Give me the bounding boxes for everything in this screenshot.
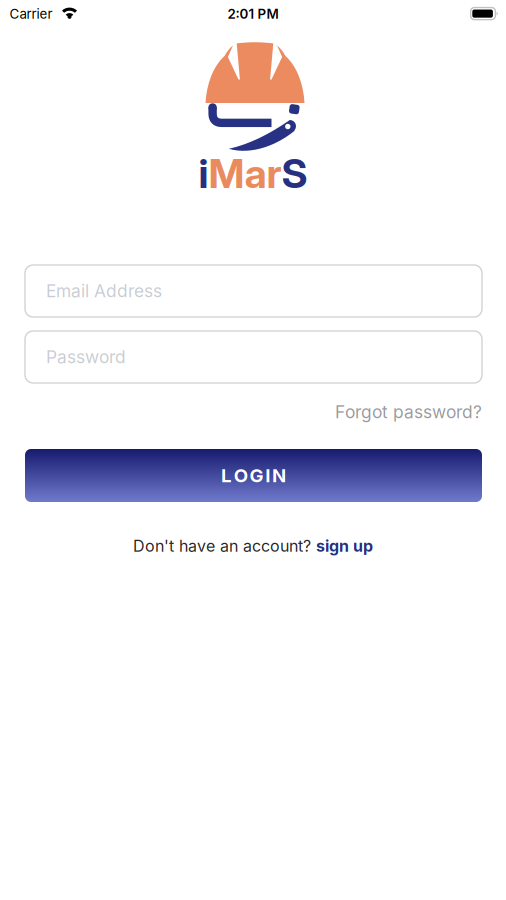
staticText: i: [198, 150, 208, 197]
staticText: N: [272, 464, 286, 486]
staticText: G: [249, 464, 263, 486]
staticText: 2:01 PM: [227, 6, 278, 22]
button[interactable]: Password: [25, 331, 482, 383]
staticText: Don't have an account?: [133, 537, 311, 555]
button[interactable]: Email Address: [25, 265, 482, 317]
button[interactable]: L: [25, 449, 482, 502]
staticText: S: [281, 150, 307, 197]
staticText: L: [221, 464, 232, 486]
staticText: Password: [46, 347, 126, 367]
button[interactable]: Forgot password?: [335, 402, 482, 422]
staticText: I: [265, 464, 270, 486]
staticText: sign up: [316, 537, 373, 555]
staticText: Email Address: [46, 281, 162, 301]
staticText: Carrier: [9, 6, 52, 22]
staticText: Forgot password?: [335, 402, 482, 422]
staticText: Mar: [208, 150, 281, 197]
staticText: O: [234, 464, 248, 486]
button[interactable]: sign up: [316, 537, 373, 555]
